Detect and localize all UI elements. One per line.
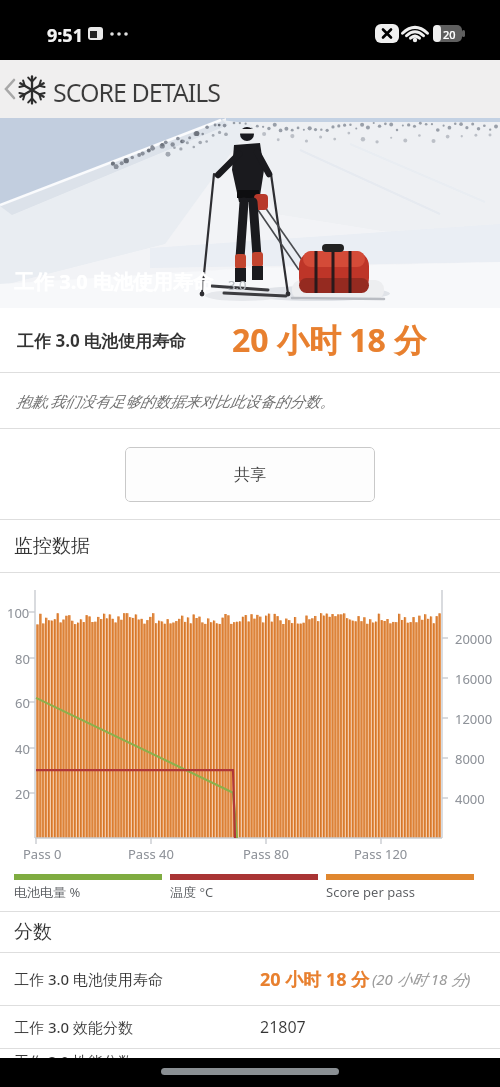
staticText: 100 [7, 604, 30, 622]
staticText: SCORE DETAILS [53, 75, 221, 109]
staticText: 20 小时 18 分 [260, 967, 370, 992]
staticText: Pass 80 [243, 845, 289, 863]
button[interactable]: 共享 [125, 447, 375, 502]
staticText: Pass 120 [354, 845, 408, 863]
staticText: Pass 40 [128, 845, 174, 863]
staticText: 工作 3.0 电池使用寿命 [14, 268, 213, 295]
staticText: Score per pass [326, 883, 415, 901]
staticText: 共享 [234, 465, 266, 485]
staticText: 20 [443, 27, 456, 42]
staticText: Pass 0 [23, 845, 62, 863]
staticText: 抱歉,我们没有足够的数据来对比此设备的分数。 [16, 391, 335, 411]
staticText: 电池电量 % [14, 883, 81, 901]
staticText: 21807 [260, 1016, 306, 1038]
staticText: 工作 3.0 效能分数 [14, 1017, 134, 1037]
button[interactable]: 工作 3.0 电池使用寿命 [0, 308, 500, 372]
staticText: 60 [15, 694, 30, 712]
staticText: 80 [15, 650, 30, 668]
staticText: 4000 [455, 790, 485, 808]
staticText: 分数 [14, 920, 52, 944]
staticText: 40 [15, 740, 30, 758]
staticText: 9:51 [47, 23, 83, 48]
staticText: 8000 [455, 750, 485, 768]
staticText: 工作 3.0 电池使用寿命 [17, 329, 187, 352]
staticText: 工作 3.0 性能分数 [14, 1051, 134, 1058]
button[interactable] [0, 60, 50, 118]
staticText: 监控数据 [14, 534, 90, 558]
staticText: 16000 [455, 670, 493, 688]
button[interactable]: 工作 3.0 效能分数 [0, 1006, 500, 1048]
staticText: (20 小时 18 分) [372, 969, 471, 989]
staticText: 工作 3.0 电池使用寿命 [14, 969, 164, 989]
staticText: 20000 [455, 630, 493, 648]
staticText: 3.0 [228, 276, 247, 294]
staticText: 12000 [455, 710, 493, 728]
staticText: 温度 °C [170, 883, 214, 901]
staticText: 20 [15, 785, 30, 803]
button[interactable]: 工作 3.0 电池使用寿命 [0, 953, 500, 1005]
staticText: 20 小时 18 分 [232, 318, 427, 362]
